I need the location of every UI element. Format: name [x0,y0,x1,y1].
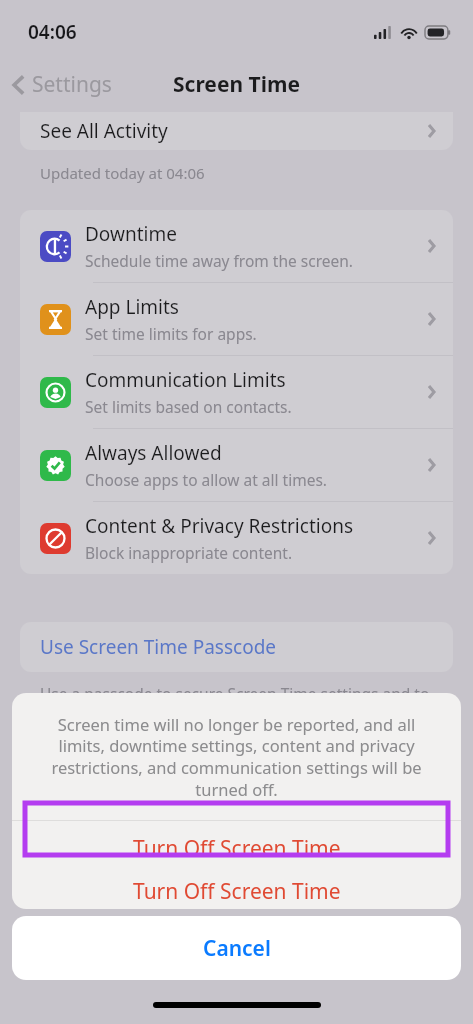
staticText: Updated today at 04:06 [40,163,205,183]
staticText: Turn Off Screen Time [133,834,341,863]
button[interactable]: Turn Off Screen Time [12,821,461,875]
staticText: Set time limits for apps. [85,323,257,344]
staticText: Turn Off Screen Time [133,877,341,906]
staticText: Communication Limits [85,367,286,393]
staticText: Cancel [203,934,271,963]
staticText: Use a passcode to secure Screen Time set… [40,683,443,724]
button[interactable]: Use Screen Time Passcode [20,622,453,672]
staticText: Set limits based on contacts. [85,396,292,417]
staticText: Block inappropriate content. [85,542,293,563]
staticText: App Limits [85,294,179,320]
button[interactable]: See All Activity [20,112,453,150]
button[interactable]: Turn Off Screen Time [12,875,461,909]
button[interactable]: Settings [0,64,122,105]
button[interactable]: Always Allowed [20,429,453,501]
staticText: Use Screen Time Passcode [40,634,277,660]
button[interactable]: App Limits [20,283,453,355]
button[interactable]: Content & Privacy Restrictions [20,502,453,574]
staticText: Choose apps to allow at all times. [85,469,327,490]
staticText: Schedule time away from the screen. [85,250,353,271]
staticText: Screen Time [173,70,300,99]
staticText: Screen time will no longer be reported, … [38,713,435,801]
staticText: Always Allowed [85,440,222,466]
staticText: Content & Privacy Restrictions [85,513,353,539]
button[interactable]: Downtime [20,210,453,282]
staticText: Settings [32,70,112,99]
staticText: Downtime [85,221,177,247]
staticText: See All Activity [40,118,168,144]
other: Home indicator [153,1002,321,1008]
button[interactable]: Communication Limits [20,356,453,428]
staticText: 04:06 [28,19,77,45]
button[interactable]: Cancel [12,916,461,980]
